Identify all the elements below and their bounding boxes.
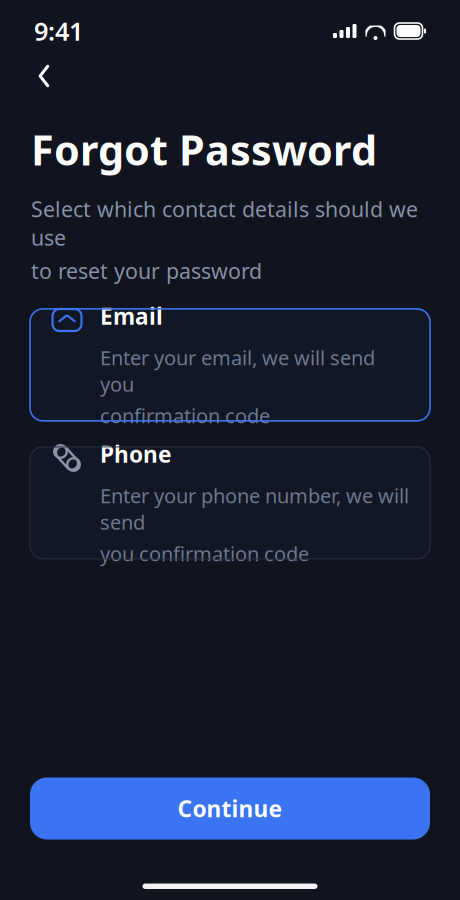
staticText: Forgot Password [31,122,377,177]
staticText: Select which contact details should we u… [31,195,418,252]
staticText: Email [100,301,163,331]
staticText: you confirmation code [100,540,309,567]
staticText: Phone [100,439,172,469]
staticText: to reset your password [31,256,262,285]
button[interactable]: Phone [30,447,430,559]
staticText: confirmation code [100,402,270,429]
button[interactable]: Continue [30,777,430,839]
staticText: Enter your phone number, we will send [100,482,409,535]
staticText: Continue [177,793,282,823]
button[interactable]: Back [22,54,66,98]
button[interactable]: Email [30,309,430,421]
staticText: Enter your email, we will send you [100,344,375,397]
staticText: 9:41 [34,14,83,48]
